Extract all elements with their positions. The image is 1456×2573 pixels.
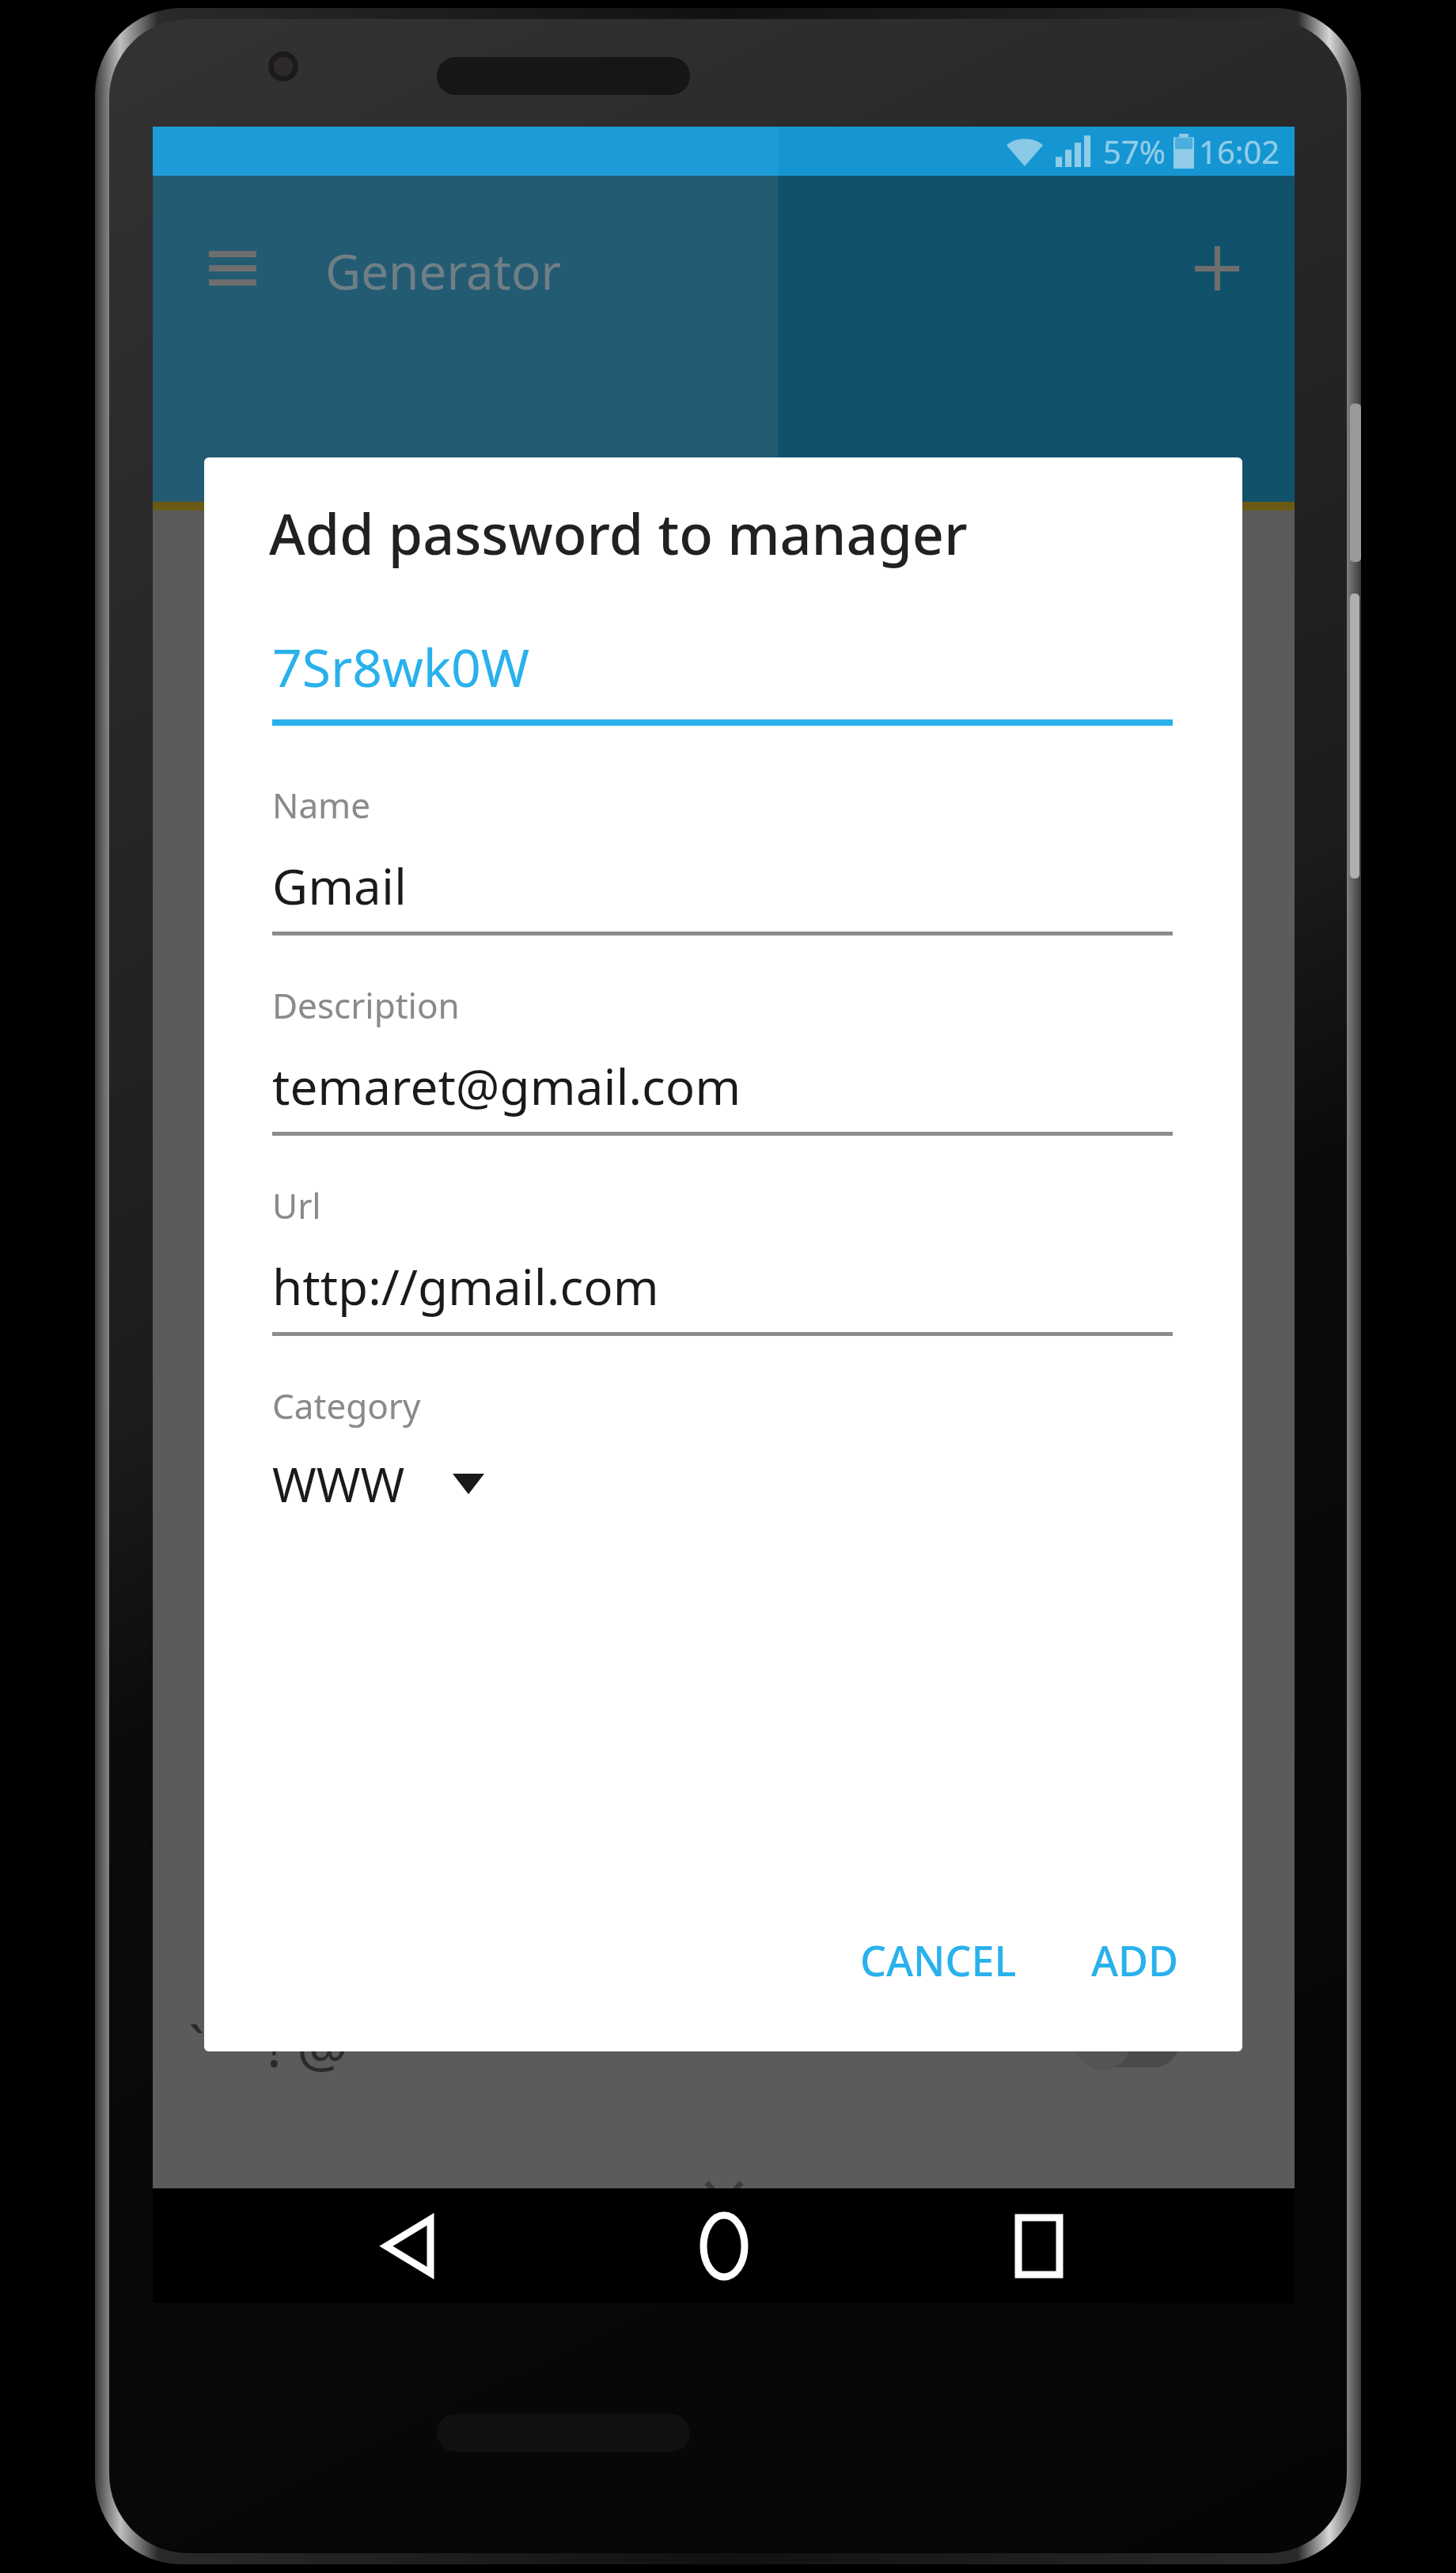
button[interactable]: Name — [272, 781, 1173, 935]
staticText: Category — [272, 1382, 421, 1429]
button[interactable]: Url — [272, 1182, 1173, 1336]
button[interactable]: Open navigation menu — [197, 233, 268, 304]
button[interactable]: Add — [1181, 233, 1253, 304]
button[interactable]: Description — [272, 981, 1173, 1136]
staticText: WWW — [272, 1452, 405, 1516]
button[interactable]: CANCEL — [841, 1918, 1036, 2002]
staticText: Gmail — [272, 852, 407, 919]
staticText: http://gmail.com — [272, 1253, 659, 1319]
staticText: Description — [272, 981, 460, 1029]
staticText: ADD — [1091, 1932, 1179, 1988]
staticText: 57% — [1103, 130, 1166, 173]
button[interactable]: Category — [272, 1382, 1173, 1516]
button[interactable]: Home — [665, 2188, 783, 2303]
staticText: 7Sr8wk0W — [272, 631, 530, 702]
button[interactable]: Recent apps — [980, 2188, 1098, 2303]
staticText: 16:02 — [1199, 130, 1280, 173]
staticText: CANCEL — [860, 1932, 1017, 1988]
button[interactable]: Back — [349, 2188, 468, 2303]
staticText: Url — [272, 1182, 321, 1229]
button[interactable]: ADD — [1072, 1918, 1198, 2002]
staticText: Add password to manager — [269, 495, 968, 571]
staticText: Name — [272, 781, 371, 829]
staticText: temaret@gmail.com — [272, 1053, 741, 1119]
staticText: Generator — [325, 237, 562, 304]
button[interactable]: 7Sr8wk0W — [272, 631, 1173, 726]
staticText: ` ~ ! @ — [188, 2006, 348, 2084]
button[interactable]: Toggle — [1084, 2018, 1179, 2067]
